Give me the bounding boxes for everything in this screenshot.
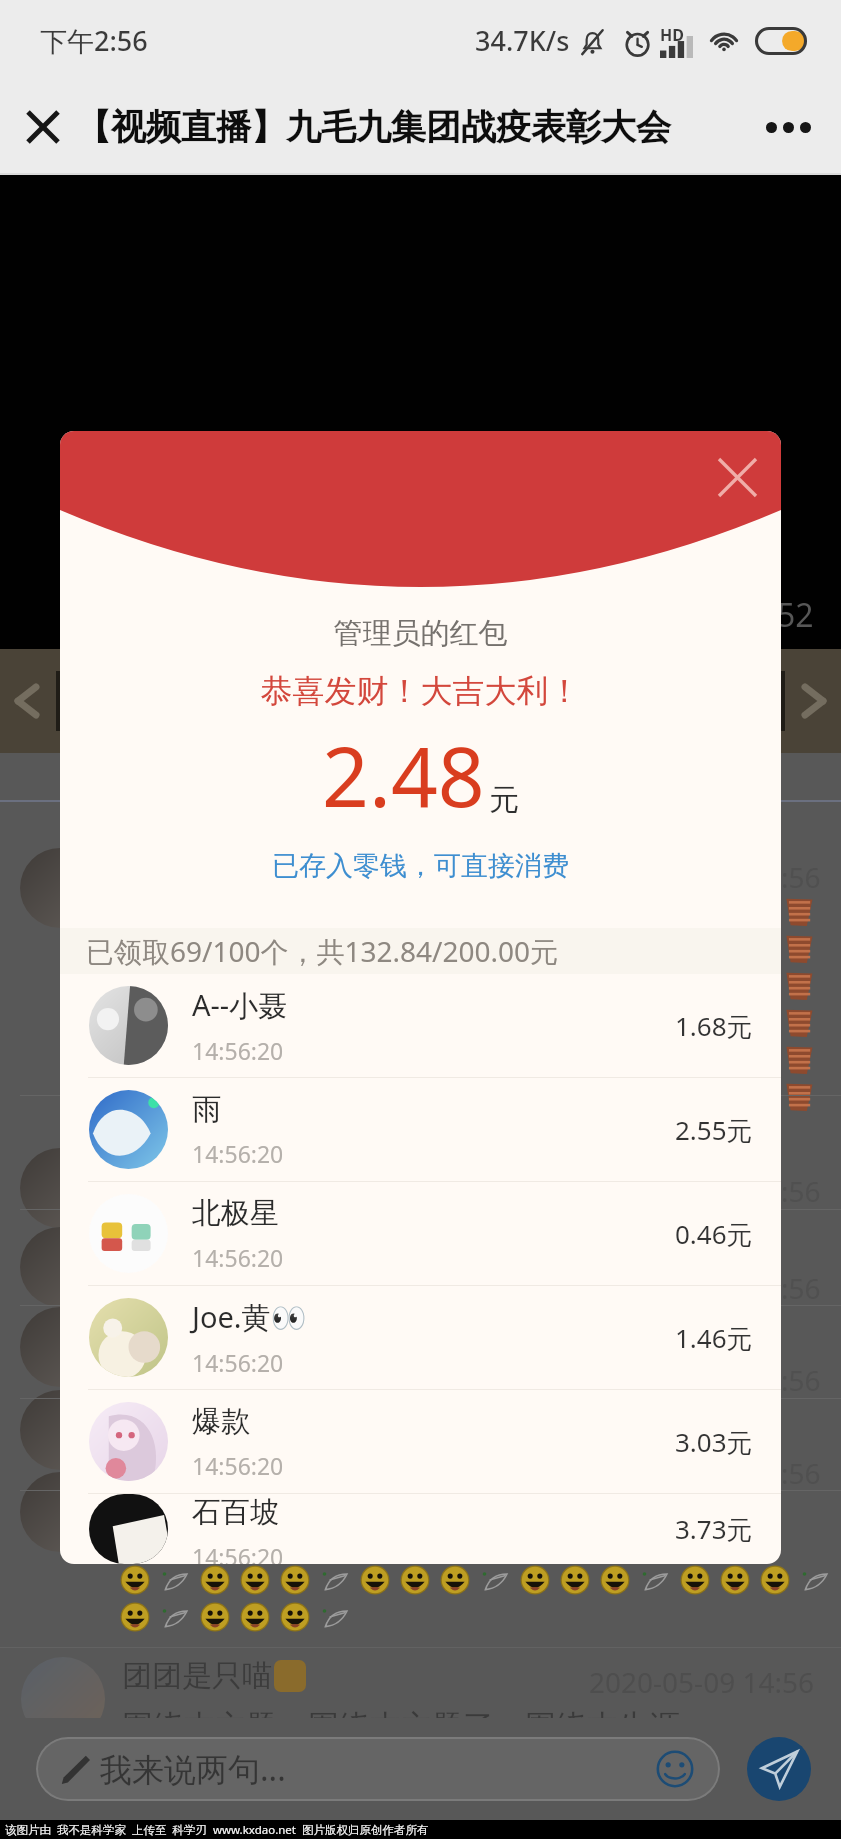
staticText: 3.73元 xyxy=(675,1511,753,1547)
button[interactable]: 我来说两句... xyxy=(60,1737,694,1801)
other: Previous xyxy=(18,687,36,715)
staticText: 恭喜发财！大吉大利！ xyxy=(60,671,781,711)
staticText: 14:56:20 xyxy=(192,1138,284,1169)
staticText: 团团是只喵 xyxy=(122,1657,272,1695)
staticText: HD xyxy=(660,24,684,46)
staticText: 14:56:20 xyxy=(192,1541,284,1564)
button[interactable]: More options xyxy=(752,91,824,163)
staticText: 2.48 xyxy=(322,719,485,831)
staticText: 我来说两句... xyxy=(100,1747,286,1791)
staticText: Joe.黄👀 xyxy=(192,1297,307,1337)
staticText: 爆款 xyxy=(192,1403,250,1440)
staticText: 石百坡 xyxy=(192,1494,279,1531)
button[interactable]: A--小聂 xyxy=(60,974,781,1078)
button[interactable]: Joe.黄👀 xyxy=(60,1286,781,1390)
staticText: 14:56:20 xyxy=(192,1242,284,1273)
button[interactable]: 爆款 xyxy=(60,1390,781,1494)
staticText: 下午2:56 xyxy=(40,22,148,59)
staticText: 34.7K/s xyxy=(475,22,570,59)
staticText: :56 xyxy=(781,1172,821,1210)
staticText: 14:56:20 xyxy=(192,1035,284,1066)
staticText: 该图片由 我不是科学家 上传至 科学刃 www.kxdao.net 图片版权归原… xyxy=(5,1822,429,1838)
button[interactable]: 石百坡 xyxy=(60,1494,781,1564)
staticText: 14:56:20 xyxy=(192,1347,284,1378)
staticText: 0.46元 xyxy=(675,1216,753,1252)
staticText: 2.55元 xyxy=(675,1112,753,1148)
staticText: :56 xyxy=(781,1269,821,1307)
button[interactable]: 北极星 xyxy=(60,1182,781,1286)
staticText: 【视频直播】九毛九集团战疫表彰大会 xyxy=(76,105,671,149)
button[interactable]: 已存入零钱，可直接消费 xyxy=(60,849,781,883)
staticText: :56 xyxy=(781,1361,821,1399)
staticText: 北极星 xyxy=(192,1195,279,1232)
staticText: 已领取69/100个，共132.84/200.00元 xyxy=(86,932,559,970)
staticText: 雨 xyxy=(192,1091,221,1128)
staticText: 1.46元 xyxy=(675,1320,753,1356)
staticText: 3.03元 xyxy=(675,1424,753,1460)
staticText: 52 xyxy=(777,593,814,637)
staticText: 元 xyxy=(489,781,519,819)
other: Emoji xyxy=(656,1750,694,1788)
staticText: A--小聂 xyxy=(192,985,288,1025)
staticText: 管理员的红包 xyxy=(60,615,781,652)
button[interactable]: Close xyxy=(7,91,79,163)
staticText: 围绕本主题，围绕本主题了，围绕本生涯 xyxy=(122,1707,680,1746)
button[interactable]: Send xyxy=(747,1737,811,1801)
staticText: 2020-05-09 14:56 xyxy=(589,1663,815,1701)
other: Next xyxy=(805,687,823,715)
staticText: 1.68元 xyxy=(675,1008,753,1044)
staticText: 14:56:20 xyxy=(192,1450,284,1481)
staticText: :56 xyxy=(781,1454,821,1492)
button[interactable]: Close red packet xyxy=(705,445,769,509)
button[interactable]: 雨 xyxy=(60,1078,781,1182)
